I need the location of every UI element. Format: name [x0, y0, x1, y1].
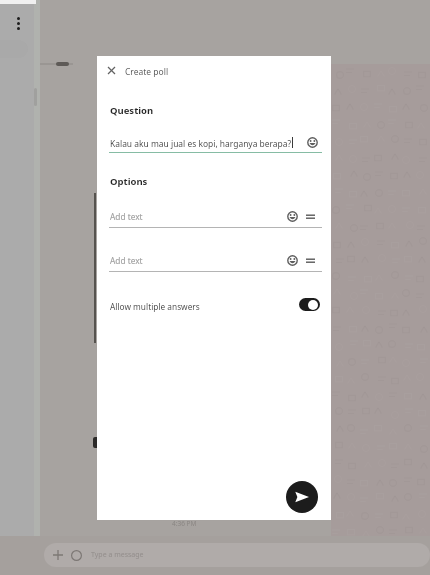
button[interactable]: Close [99, 58, 123, 82]
button[interactable]: Attach [53, 550, 63, 560]
staticText: Add text [110, 255, 143, 266]
button[interactable]: Emoji [71, 550, 82, 561]
button[interactable]: Emoji [287, 211, 298, 222]
button[interactable]: More options [17, 17, 20, 30]
staticText: Kalau aku mau jual es kopi, harganya ber… [110, 138, 292, 150]
staticText: Add text [110, 211, 143, 222]
staticText: 4:36 PM [172, 519, 197, 528]
button[interactable]: Emoji [307, 137, 318, 148]
staticText: Type a message [91, 550, 144, 560]
button[interactable] [97, 204, 331, 226]
button[interactable] [97, 248, 331, 270]
button[interactable]: Allow multiple answers [110, 292, 320, 316]
staticText: Question [110, 104, 154, 117]
button[interactable] [97, 56, 331, 90]
button[interactable]: Attach [44, 543, 430, 567]
button[interactable]: Send poll [286, 481, 318, 513]
staticText: Options [110, 175, 148, 188]
button[interactable]: Reorder option [306, 258, 315, 263]
staticText: Allow multiple answers [110, 301, 299, 312]
staticText: Create poll [125, 66, 169, 78]
button[interactable]: Emoji [287, 255, 298, 266]
button[interactable]: Reorder option [306, 214, 315, 219]
